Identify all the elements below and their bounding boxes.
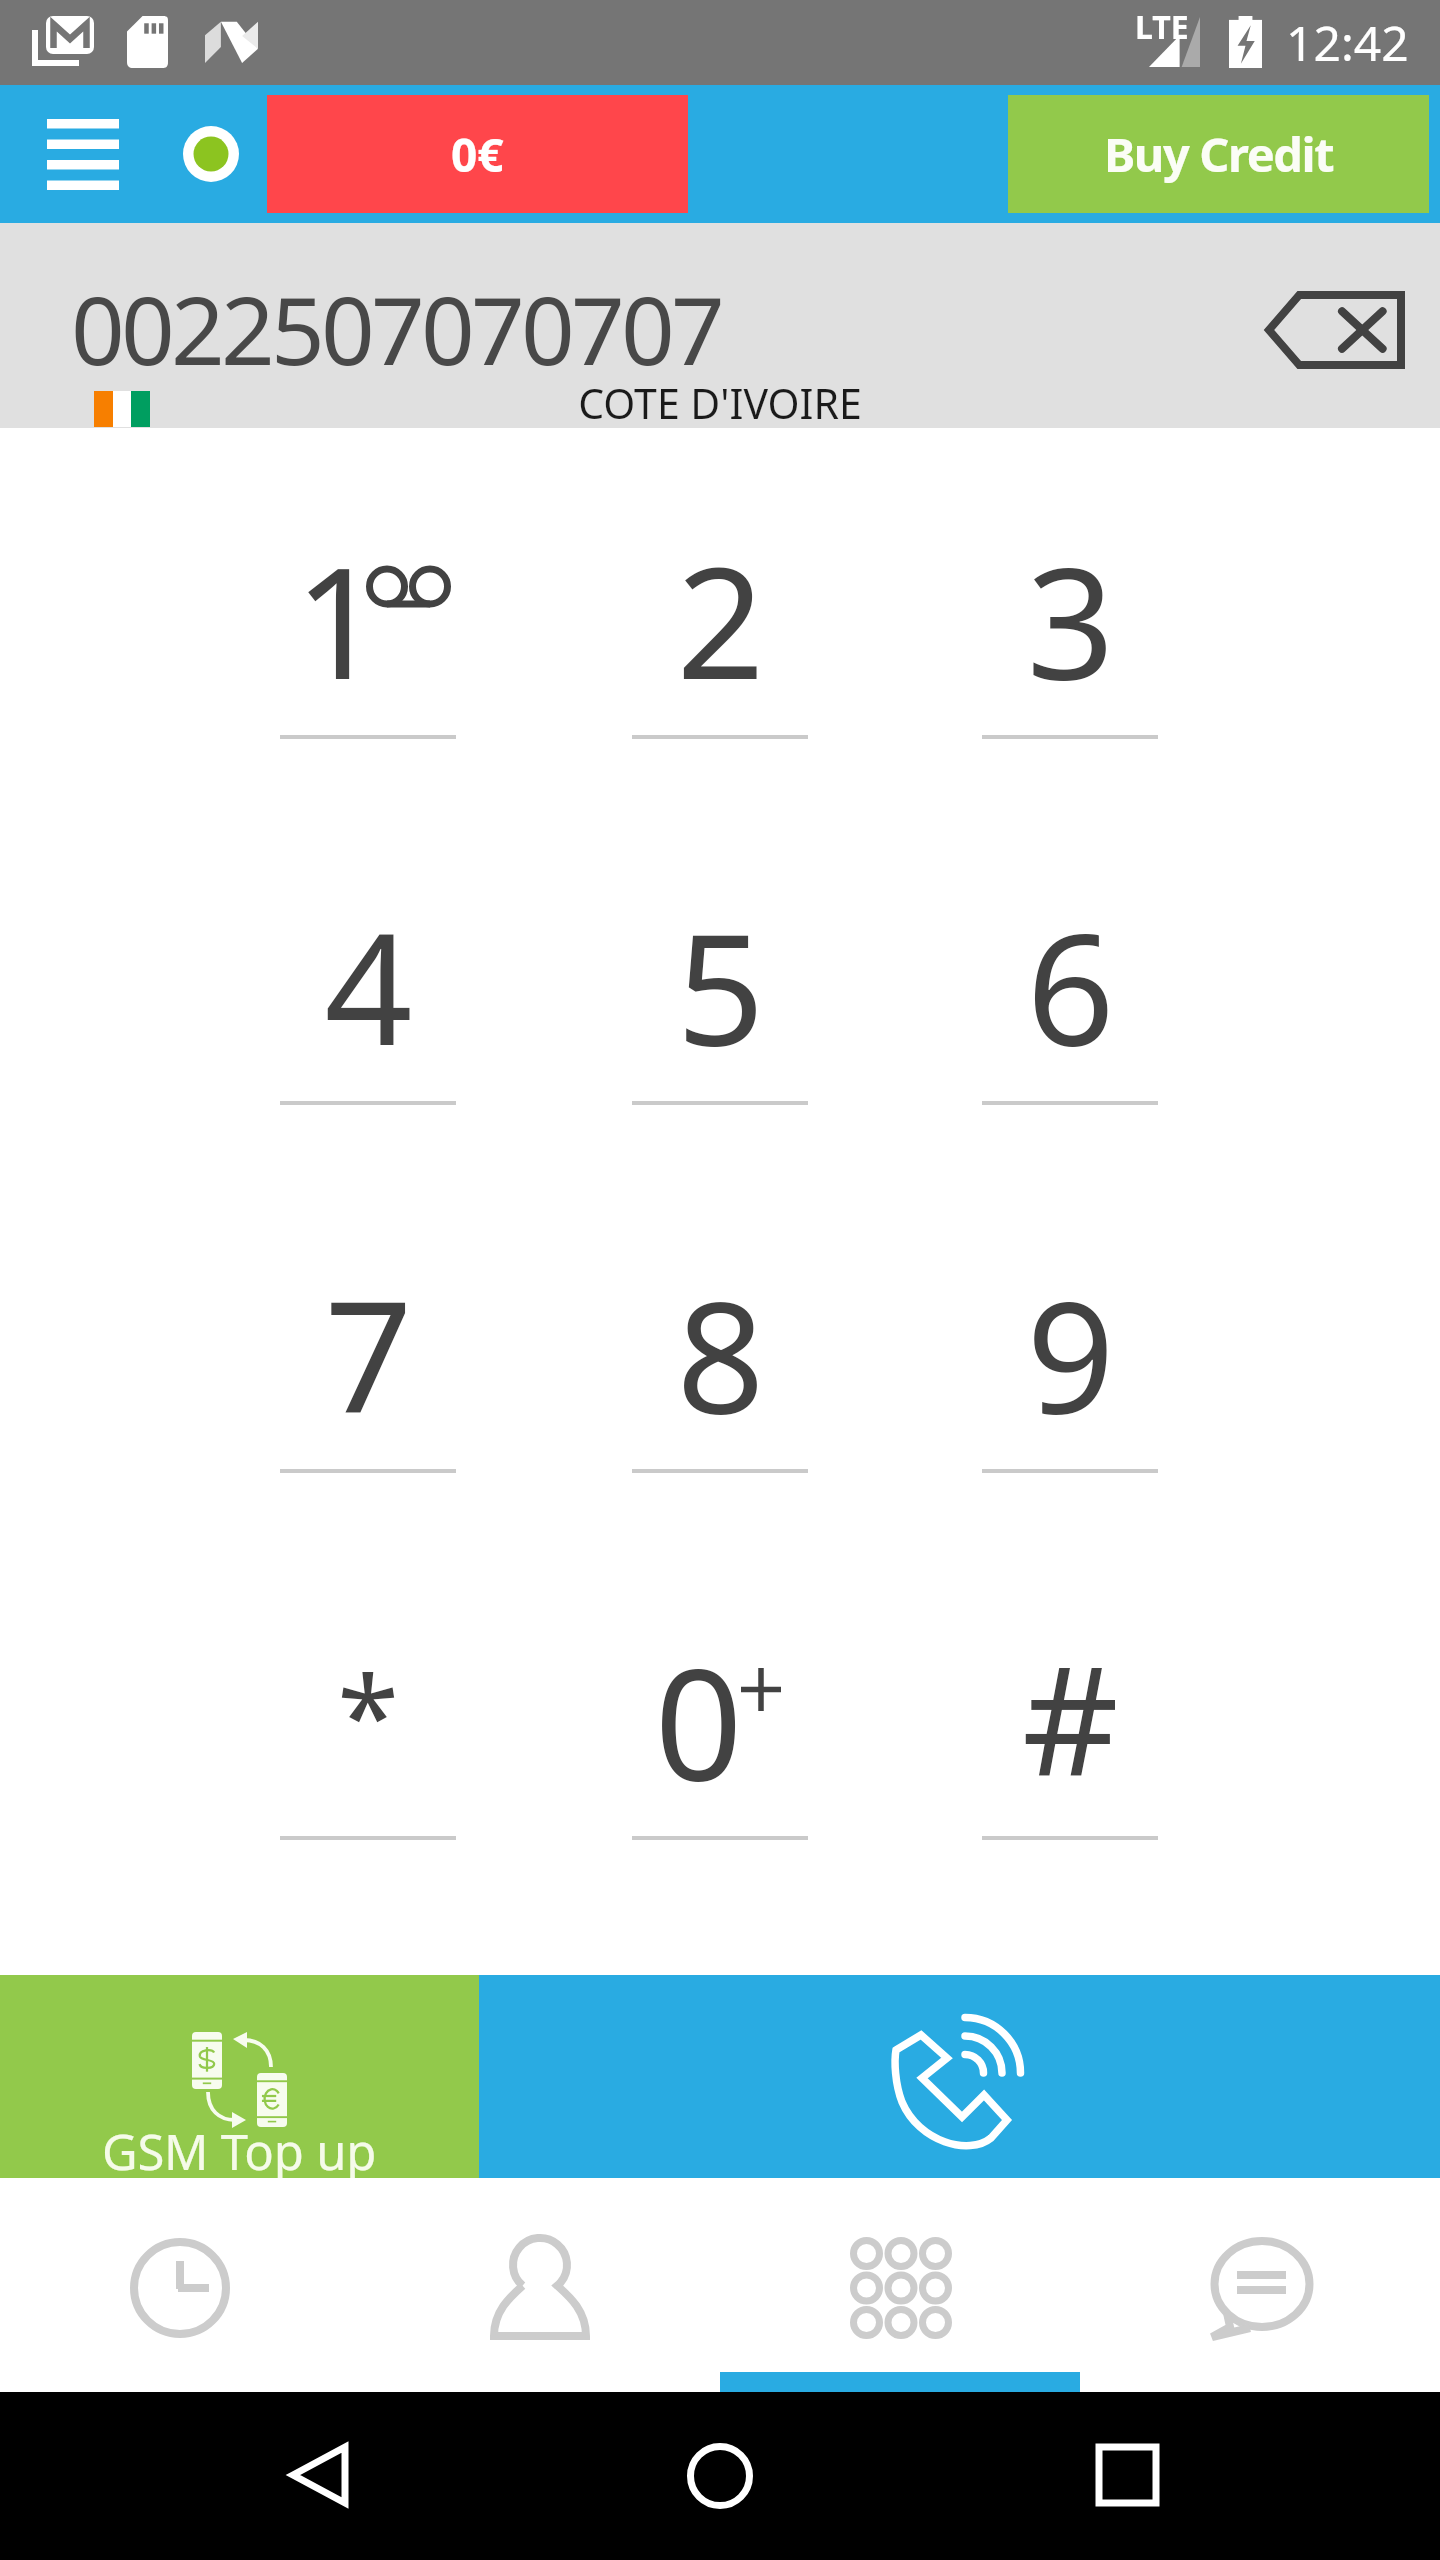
button[interactable]: 3 <box>894 538 1246 898</box>
staticText: * <box>337 1637 399 1790</box>
staticText: 6 <box>1026 880 1115 1090</box>
button[interactable]: * <box>192 1639 544 1999</box>
staticText: LTE <box>1135 5 1189 49</box>
staticText: 0022507070707 <box>71 265 722 393</box>
staticText: # <box>1022 1615 1119 1819</box>
button[interactable]: Home <box>650 2392 790 2559</box>
button[interactable]: Recent apps <box>1054 2392 1194 2559</box>
button[interactable]: 0 <box>544 1639 896 1999</box>
staticText: 5 <box>676 880 765 1090</box>
staticText: GSM Top up <box>102 2118 377 2185</box>
staticText: 9 <box>1026 1248 1115 1458</box>
staticText: 2 <box>676 514 765 724</box>
button[interactable]: Recent calls <box>0 2178 360 2392</box>
staticText: 12:42 <box>1286 10 1409 75</box>
staticText: COTE D'IVOIRE <box>578 375 862 431</box>
staticText: 8 <box>676 1248 765 1458</box>
button[interactable]: 1 <box>192 538 544 898</box>
button[interactable]: 8 <box>544 1272 896 1632</box>
button[interactable]: 5 <box>544 904 896 1264</box>
button[interactable]: Messages <box>1080 2178 1440 2392</box>
button[interactable]: Dialpad <box>720 2178 1080 2392</box>
staticText: 3 <box>1026 514 1115 724</box>
button[interactable]: Menu <box>0 85 168 223</box>
staticText: 1 <box>294 514 383 724</box>
button[interactable]: 9 <box>894 1272 1246 1632</box>
button[interactable]: Call <box>479 1975 1440 2178</box>
staticText: 0€ <box>451 123 504 186</box>
button[interactable]: # <box>894 1639 1246 1999</box>
staticText: Buy Credit <box>1104 122 1334 186</box>
button[interactable]: Buy Credit <box>1008 95 1429 213</box>
staticText: 7 <box>324 1248 413 1458</box>
button[interactable]: Connection status <box>168 85 256 223</box>
button[interactable]: 7 <box>192 1272 544 1632</box>
button[interactable]: Backspace <box>1236 275 1434 385</box>
button[interactable]: 6 <box>894 904 1246 1264</box>
button[interactable]: GSM Top up <box>0 1975 479 2178</box>
button[interactable]: 4 <box>192 904 544 1264</box>
button[interactable]: Back <box>246 2392 386 2559</box>
staticText: 0 <box>654 1615 743 1825</box>
button[interactable]: 0€ <box>267 95 688 213</box>
button[interactable]: Contacts <box>360 2178 720 2392</box>
button[interactable]: 2 <box>544 538 896 898</box>
staticText: 4 <box>324 880 413 1090</box>
